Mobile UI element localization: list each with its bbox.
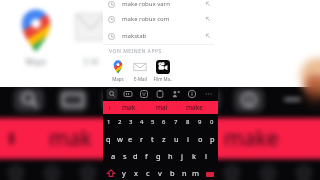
button[interactable]: x: [130, 164, 142, 180]
button[interactable]: n: [178, 164, 190, 180]
button[interactable]: E-Mail: [129, 60, 151, 82]
staticText: 8: [186, 118, 190, 126]
staticText: make robux varn: [122, 0, 170, 8]
staticText: 1: [107, 118, 111, 126]
button[interactable]: f: [141, 147, 152, 164]
button[interactable]: 4: [136, 114, 147, 130]
button[interactable]: Clipboard: [156, 90, 164, 98]
button[interactable]: p: [206, 130, 218, 147]
staticText: v: [158, 168, 162, 178]
button[interactable]: l: [200, 147, 212, 164]
staticText: x: [134, 168, 138, 178]
button[interactable]: c: [142, 164, 154, 180]
button[interactable]: 8: [182, 114, 194, 130]
staticText: a: [111, 151, 116, 161]
staticText: 6: [162, 118, 166, 126]
staticText: c: [146, 168, 150, 178]
button[interactable]: i: [105, 101, 114, 114]
staticText: 9: [198, 118, 202, 126]
button[interactable]: y: [118, 164, 130, 180]
button[interactable]: More options: [205, 90, 213, 98]
staticText: 0: [210, 118, 214, 126]
button[interactable]: 5: [147, 114, 158, 130]
button[interactable]: 9: [194, 114, 206, 130]
staticText: r: [140, 134, 144, 144]
staticText: VON MEINEN APPS: [109, 48, 162, 55]
staticText: w: [117, 134, 123, 144]
staticText: Maps: [22, 56, 50, 67]
button[interactable]: z: [158, 130, 170, 147]
staticText: 5: [151, 118, 155, 126]
staticText: b: [170, 168, 175, 178]
staticText: E-Mail: [134, 76, 147, 82]
staticText: make: [186, 103, 203, 112]
staticText: 3: [129, 118, 133, 126]
button[interactable]: mak: [115, 101, 143, 114]
button[interactable]: 7: [170, 114, 182, 130]
staticText: g: [156, 151, 161, 161]
staticText: mal: [156, 103, 168, 112]
button[interactable]: k: [188, 147, 200, 164]
button[interactable]: s: [119, 147, 130, 164]
button[interactable]: GIF: [124, 90, 132, 98]
button[interactable]: Search: [108, 90, 116, 98]
button[interactable]: 6: [158, 114, 170, 130]
button[interactable]: v: [154, 164, 166, 180]
staticText: o: [198, 134, 203, 144]
button[interactable]: Shift: [103, 164, 118, 180]
button[interactable]: Translate: [172, 90, 180, 98]
staticText: 7: [174, 118, 178, 126]
button[interactable]: b: [166, 164, 178, 180]
staticText: Film Ma..: [153, 76, 173, 82]
button[interactable]: mal: [150, 101, 174, 114]
button[interactable]: 3: [125, 114, 136, 130]
staticText: u: [174, 134, 179, 144]
staticText: j: [181, 151, 183, 161]
button[interactable]: make: [179, 101, 209, 114]
staticText: m: [192, 168, 200, 178]
staticText: Maps: [112, 76, 124, 82]
staticText: t: [151, 134, 154, 144]
staticText: make: [224, 124, 279, 153]
staticText: q: [106, 134, 111, 144]
button[interactable]: 1: [103, 114, 114, 130]
button[interactable]: 2: [114, 114, 125, 130]
staticText: 2: [118, 118, 122, 126]
button[interactable]: a: [108, 147, 119, 164]
staticText: make robux com: [122, 15, 170, 23]
button[interactable]: r: [136, 130, 147, 147]
button[interactable]: Film Ma..: [152, 60, 174, 82]
button[interactable]: make robux varn: [103, 0, 214, 12]
button[interactable]: e: [125, 130, 136, 147]
button[interactable]: m: [190, 164, 202, 180]
staticText: y: [122, 168, 126, 178]
button[interactable]: o: [194, 130, 206, 147]
staticText: l: [205, 151, 207, 161]
button[interactable]: j: [176, 147, 188, 164]
button[interactable]: g: [152, 147, 164, 164]
button[interactable]: make robux com: [103, 11, 214, 27]
staticText: i: [109, 104, 111, 112]
button[interactable]: u: [170, 130, 182, 147]
staticText: i: [187, 134, 189, 144]
button[interactable]: Maps: [107, 60, 129, 82]
button[interactable]: w: [114, 130, 125, 147]
button[interactable]: t: [147, 130, 158, 147]
staticText: d: [133, 151, 138, 161]
staticText: mal: [142, 124, 179, 153]
button[interactable]: h: [164, 147, 176, 164]
staticText: n: [182, 168, 187, 178]
staticText: mak: [122, 103, 136, 112]
button[interactable]: i: [182, 130, 194, 147]
button[interactable]: Settings: [188, 90, 196, 98]
button[interactable]: makstab: [103, 28, 214, 44]
button[interactable]: Backspace: [202, 164, 218, 180]
staticText: 4: [140, 118, 144, 126]
button[interactable]: q: [103, 130, 114, 147]
button[interactable]: d: [130, 147, 141, 164]
staticText: f: [145, 151, 148, 161]
button[interactable]: 0: [206, 114, 218, 130]
button[interactable]: Stickers: [140, 90, 148, 98]
staticText: makstab: [122, 32, 147, 40]
staticText: s: [123, 151, 127, 161]
